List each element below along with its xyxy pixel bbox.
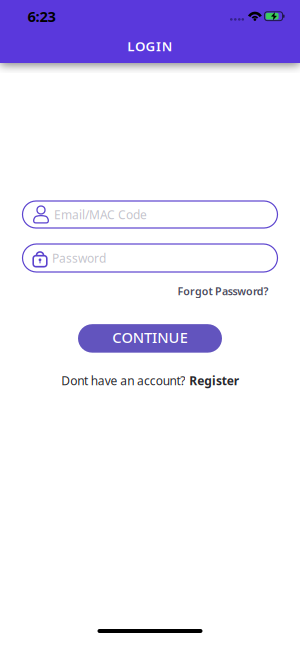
- button[interactable]: Register: [189, 373, 239, 389]
- staticText: Password: [52, 250, 106, 266]
- button[interactable]: Email/MAC Code: [22, 201, 277, 228]
- staticText: Register: [189, 373, 239, 389]
- staticText: Forgot Password?: [177, 284, 268, 298]
- staticText: 6:23: [27, 6, 55, 26]
- button[interactable]: Forgot Password?: [177, 284, 268, 298]
- staticText: Dont have an account?: [61, 373, 185, 389]
- button[interactable]: Password: [22, 244, 277, 272]
- button[interactable]: CONTINUE: [78, 324, 222, 353]
- staticText: CONTINUE: [112, 328, 188, 347]
- staticText: LOGIN: [127, 37, 173, 55]
- staticText: Email/MAC Code: [54, 206, 147, 222]
